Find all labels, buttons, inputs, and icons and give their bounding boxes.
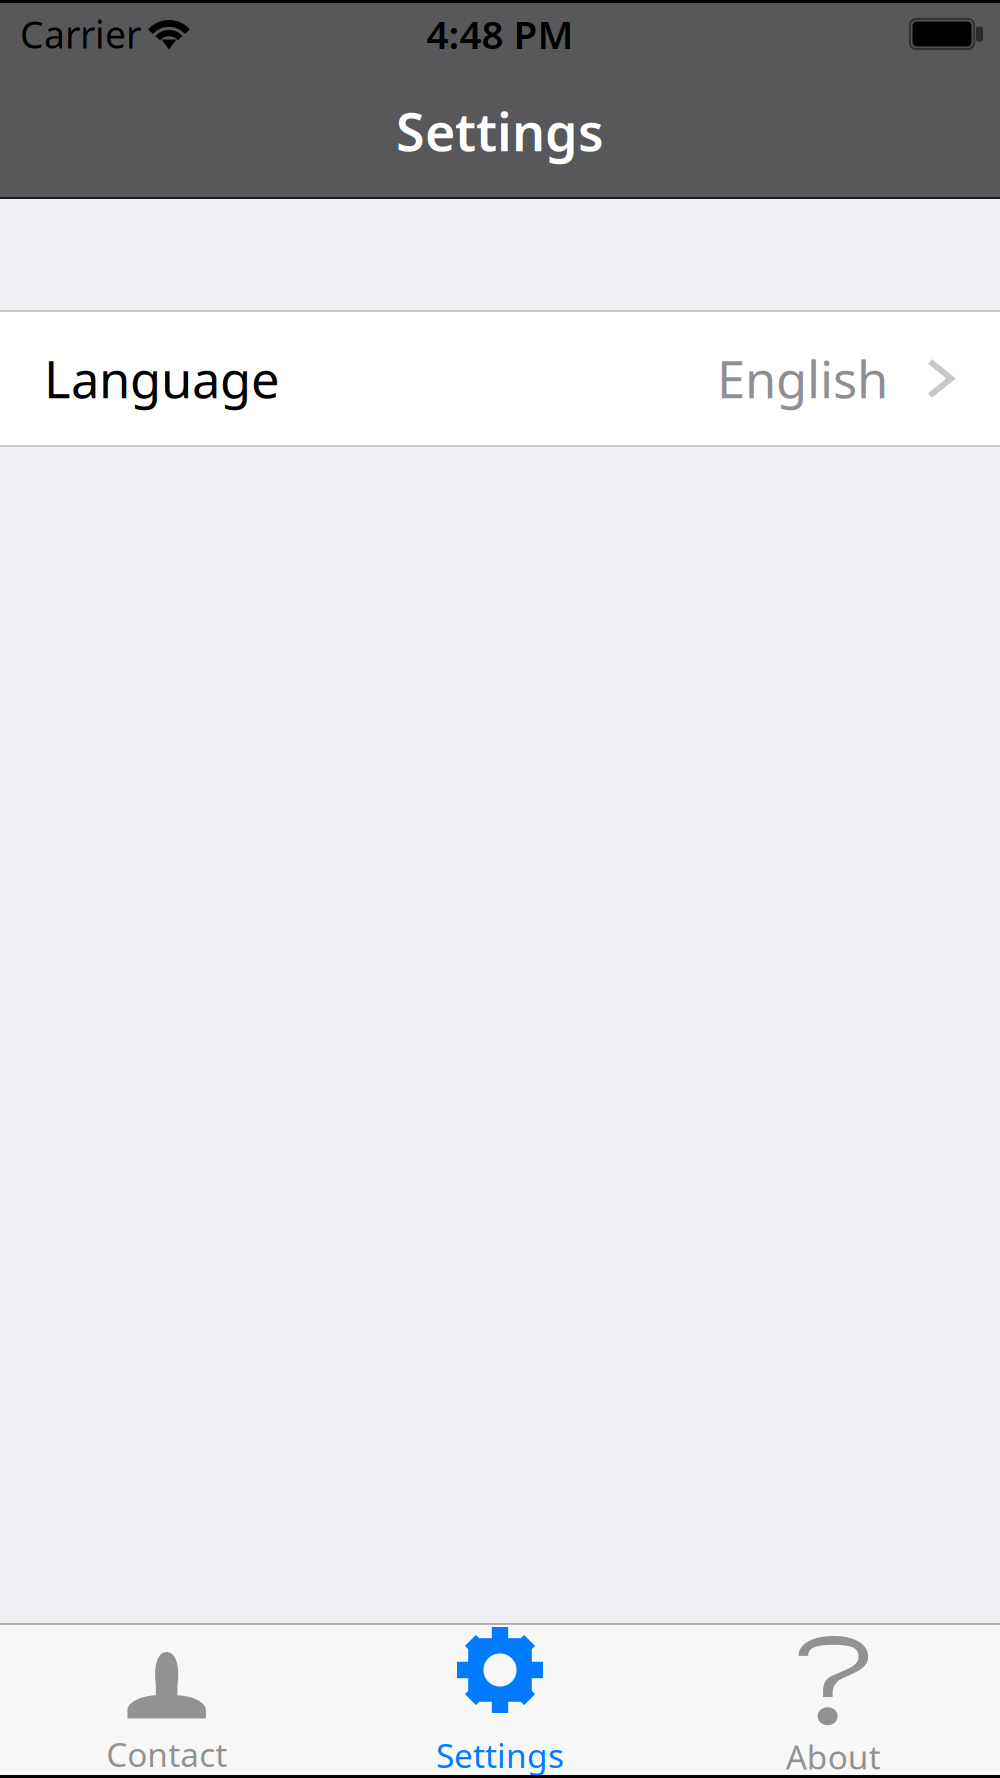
staticText: Contact bbox=[106, 1732, 227, 1776]
staticText: About bbox=[786, 1734, 881, 1778]
staticText: Settings bbox=[436, 1733, 564, 1777]
staticText: English bbox=[717, 345, 888, 412]
staticText: Language bbox=[44, 345, 280, 412]
button[interactable]: Contact bbox=[0, 1625, 333, 1775]
staticText: 4:48 PM bbox=[426, 8, 573, 60]
button[interactable]: About bbox=[667, 1625, 1000, 1775]
button[interactable]: Settings bbox=[333, 1625, 667, 1775]
staticText: Carrier bbox=[20, 9, 141, 59]
button[interactable]: Language bbox=[0, 312, 1000, 445]
staticText: Settings bbox=[396, 96, 604, 166]
